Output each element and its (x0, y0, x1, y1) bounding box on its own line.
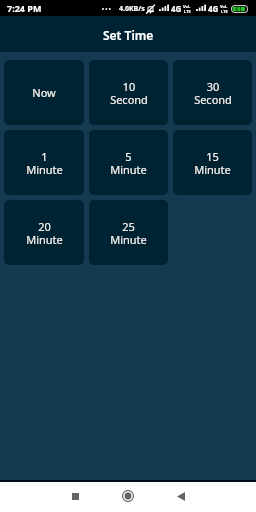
staticText: LTE (184, 9, 191, 14)
staticText: 4G (208, 3, 219, 14)
staticText: Now (32, 85, 56, 100)
staticText: VoL (220, 4, 228, 9)
staticText: 7:24 PM (7, 2, 42, 14)
button[interactable]: Now (4, 60, 84, 125)
staticText: VoL (183, 4, 191, 9)
staticText: 10 Second (110, 79, 148, 107)
button[interactable]: 25 Minute (89, 200, 168, 265)
staticText: 61 (235, 5, 242, 13)
button[interactable]: 20 Minute (4, 200, 84, 265)
staticText: LTE (221, 9, 228, 14)
staticText: 25 Minute (110, 219, 147, 247)
staticText: 20 Minute (26, 219, 63, 247)
staticText: 1 Minute (26, 149, 63, 177)
button[interactable]: 10 Second (89, 60, 168, 125)
button[interactable]: 1 Minute (4, 130, 84, 195)
staticText: 4.0KB/s (119, 4, 145, 14)
button[interactable]: 30 Second (173, 60, 252, 125)
staticText: Set Time (103, 27, 154, 43)
staticText: 15 Minute (194, 149, 231, 177)
button[interactable]: 5 Minute (89, 130, 168, 195)
button[interactable]: Recent apps (57, 481, 93, 511)
button[interactable]: Back (163, 481, 199, 511)
staticText: 4G (171, 3, 182, 14)
staticText: 5 Minute (110, 149, 147, 177)
button[interactable]: 15 Minute (173, 130, 252, 195)
button[interactable]: Home (110, 481, 146, 511)
staticText: 30 Second (194, 79, 232, 107)
